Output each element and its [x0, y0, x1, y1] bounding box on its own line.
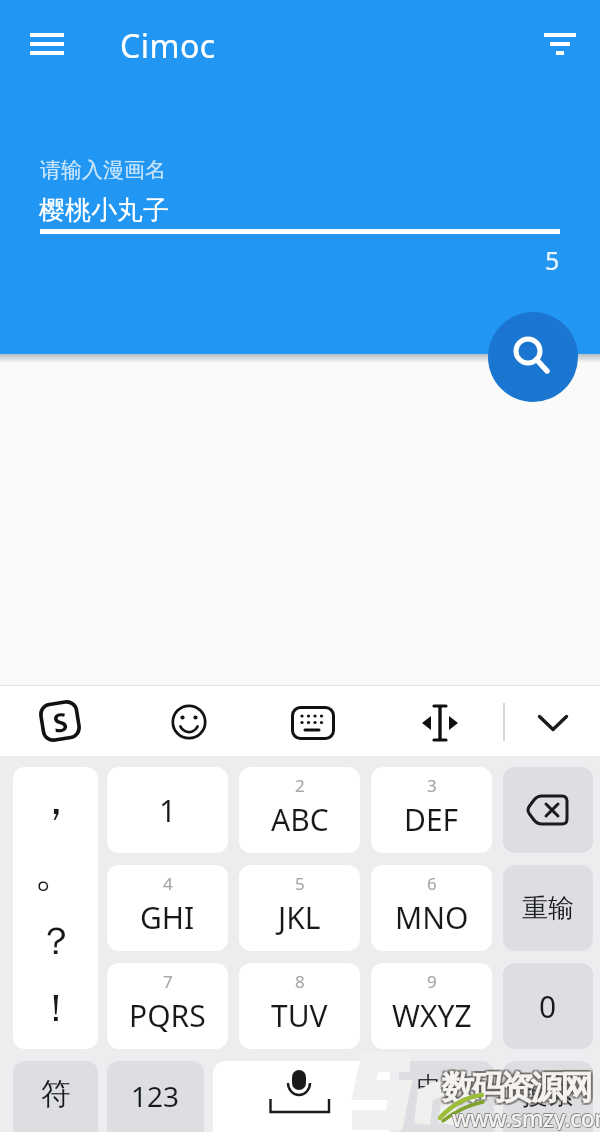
staticText: TUV [271, 995, 328, 1036]
staticText: 5 [545, 243, 560, 275]
staticText: www.smzy.com [452, 1103, 600, 1131]
staticText: 。 [34, 844, 78, 899]
staticText: 2 [295, 774, 305, 797]
staticText: 数码资源网 [442, 1067, 590, 1109]
staticText: www.smzy.com [453, 1102, 600, 1130]
button[interactable] [536, 22, 584, 66]
button[interactable] [289, 701, 337, 745]
staticText: Cimoc [120, 24, 216, 66]
staticText: 樱桃小丸子 [39, 194, 169, 227]
staticText: MNO [395, 897, 469, 938]
staticText: 请输入漫画名 [40, 157, 166, 183]
staticText: GHI [140, 897, 195, 938]
button[interactable] [488, 312, 578, 402]
staticText: 123 [131, 1077, 180, 1115]
button[interactable]: 8 [239, 963, 360, 1049]
staticText: 1 [159, 790, 177, 831]
staticText: S [50, 703, 71, 740]
staticText: 6 [427, 872, 437, 895]
staticText: 中 [417, 1071, 441, 1101]
staticText: JKL [278, 897, 321, 938]
button[interactable]: 0 [503, 963, 593, 1049]
staticText: 数码资源网 [444, 1069, 592, 1111]
staticText: 数码资源网 [442, 1069, 590, 1111]
button[interactable]: 4 [107, 865, 228, 951]
button[interactable]: 9 [371, 963, 492, 1049]
button[interactable]: 1 [107, 767, 228, 853]
staticText: 8 [295, 970, 305, 993]
staticText: 数码资源网 [440, 1065, 588, 1107]
button[interactable] [503, 767, 593, 853]
staticText: ？ [37, 917, 75, 965]
button[interactable]: 2 [239, 767, 360, 853]
staticText: DEF [404, 799, 459, 840]
button[interactable]: 5 [239, 865, 360, 951]
button[interactable]: 3 [371, 767, 492, 853]
button[interactable]: 符 [13, 1061, 98, 1132]
staticText: ！ [37, 984, 75, 1032]
staticText: ABC [271, 799, 329, 840]
button[interactable]: 7 [107, 963, 228, 1049]
button[interactable]: 搜索 [503, 1061, 593, 1132]
button[interactable]: 重输 [503, 865, 593, 951]
staticText: www.smzy.com [453, 1103, 600, 1131]
staticText: www.smzy.com [451, 1102, 600, 1130]
staticText: 数码资源网 [440, 1067, 588, 1109]
staticText: PQRS [129, 995, 206, 1036]
staticText: 数码资源网 [444, 1065, 592, 1107]
staticText: www.smzy.com [452, 1101, 600, 1129]
staticText: 3 [427, 774, 437, 797]
button[interactable] [213, 1061, 390, 1132]
staticText: 数码资源网 [442, 1065, 590, 1107]
staticText: 7 [163, 970, 173, 993]
staticText: www.smzy.com [452, 1102, 600, 1130]
staticText: ， [34, 772, 78, 827]
staticText: 4 [163, 872, 173, 895]
button[interactable] [399, 1061, 494, 1132]
button[interactable] [528, 701, 578, 745]
button[interactable] [414, 700, 466, 746]
staticText: 搜索 [522, 1079, 574, 1112]
staticText: 数码资源网 [440, 1069, 588, 1111]
staticText: WXYZ [392, 995, 472, 1036]
staticText: 重输 [522, 892, 574, 925]
button[interactable]: 123 [107, 1061, 204, 1132]
staticText: 5 [295, 872, 305, 895]
staticText: www.smzy.com [451, 1101, 600, 1129]
staticText: 数码资源网 [444, 1067, 592, 1109]
staticText: 符 [41, 1075, 71, 1113]
staticText: 0 [539, 986, 557, 1027]
button[interactable]: S [36, 697, 84, 745]
button[interactable] [13, 767, 98, 1049]
button[interactable]: 6 [371, 865, 492, 951]
button[interactable] [167, 700, 211, 744]
staticText: 9 [427, 970, 437, 993]
button[interactable] [22, 22, 72, 66]
